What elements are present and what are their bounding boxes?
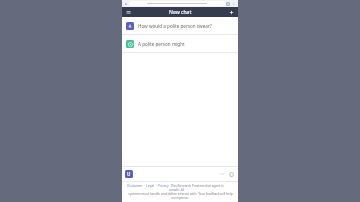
button[interactable]: New chat xyxy=(228,9,235,16)
staticText: U xyxy=(127,171,131,177)
staticText: us improve. xyxy=(171,196,189,200)
button[interactable]: More options xyxy=(218,170,226,178)
button[interactable]: Stop generating xyxy=(227,170,235,178)
button[interactable]: Account xyxy=(125,170,133,178)
staticText: This Research Preview chat agent is unsa… xyxy=(169,184,233,192)
button[interactable]: How would a polite person swear? xyxy=(122,17,238,35)
staticText: New chat xyxy=(169,9,192,16)
button[interactable]: Disclaimer xyxy=(127,184,143,188)
staticText: · xyxy=(143,184,146,188)
button[interactable]: Menu xyxy=(125,9,132,16)
staticText: A polite person might xyxy=(138,41,185,47)
button[interactable]: Privacy xyxy=(158,184,169,188)
staticText: How would a polite person swear? xyxy=(138,23,212,29)
staticText: systems must handle and define interact … xyxy=(128,192,233,196)
staticText: · xyxy=(155,184,158,188)
button[interactable]: A polite person might xyxy=(122,35,238,53)
button[interactable]: Legal xyxy=(146,184,155,188)
